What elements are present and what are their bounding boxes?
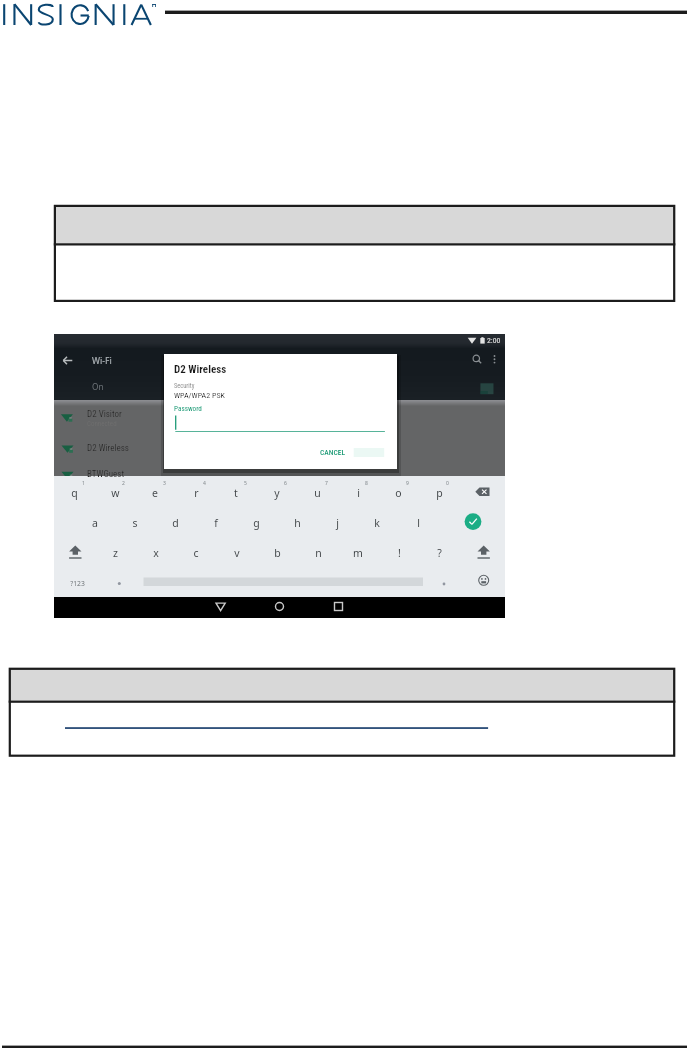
staticText: i xyxy=(357,486,360,500)
button[interactable]: 5 xyxy=(229,474,261,492)
button[interactable]: ! xyxy=(383,544,415,562)
button[interactable]: g xyxy=(240,514,272,532)
staticText: v xyxy=(234,546,240,560)
button[interactable]: o xyxy=(382,484,414,502)
staticText: c xyxy=(193,546,199,560)
button[interactable]: 8 xyxy=(350,474,382,492)
staticText: q xyxy=(71,486,78,500)
button[interactable]: f xyxy=(200,514,232,532)
staticText: WPA/WPA2 PSK xyxy=(174,391,225,400)
staticText: Security xyxy=(174,382,195,390)
button[interactable]: e xyxy=(139,484,171,502)
button[interactable]: n xyxy=(302,544,334,562)
button[interactable]: z xyxy=(99,544,131,562)
button[interactable]: 6 xyxy=(269,474,301,492)
button[interactable]: ? xyxy=(423,544,455,562)
staticText: b xyxy=(274,546,281,560)
button[interactable]: b xyxy=(261,544,293,562)
staticText: 7 xyxy=(325,480,328,487)
staticText: e xyxy=(152,486,158,500)
staticText: 1 xyxy=(82,480,85,487)
staticText: y xyxy=(274,486,280,500)
button[interactable]: l xyxy=(402,514,434,532)
button[interactable]: c xyxy=(180,544,212,562)
staticText: k xyxy=(374,516,380,530)
staticText: D2 Wireless xyxy=(87,443,129,454)
staticText: g xyxy=(253,516,260,530)
staticText: ! xyxy=(398,546,401,560)
staticText: 8 xyxy=(365,480,368,487)
staticText: 5 xyxy=(244,480,247,487)
button[interactable]: i xyxy=(342,484,374,502)
button[interactable]: Support link xyxy=(65,721,488,733)
staticText: 0 xyxy=(446,480,449,487)
button[interactable]: p xyxy=(423,484,455,502)
staticText: 4 xyxy=(203,480,206,487)
staticText: p xyxy=(436,486,443,500)
staticText: r xyxy=(194,486,199,500)
button[interactable]: a xyxy=(79,514,111,532)
button[interactable]: w xyxy=(99,484,131,502)
staticText: n xyxy=(315,546,322,560)
staticText: a xyxy=(92,516,98,530)
staticText: CANCEL xyxy=(320,448,346,457)
staticText: ? xyxy=(437,546,442,560)
staticText: 2 xyxy=(122,480,125,487)
staticText: z xyxy=(113,546,118,560)
button[interactable]: y xyxy=(261,484,293,502)
button[interactable]: j xyxy=(321,514,353,532)
staticText: o xyxy=(395,486,402,500)
staticText: t xyxy=(234,486,238,500)
staticText: ?123 xyxy=(70,579,85,588)
staticText: d xyxy=(172,516,179,530)
staticText: D2 Visitor xyxy=(87,409,122,420)
button[interactable]: 7 xyxy=(310,474,342,492)
button[interactable]: m xyxy=(342,544,374,562)
button[interactable]: k xyxy=(361,514,393,532)
staticText: m xyxy=(353,546,363,560)
staticText: f xyxy=(214,516,218,530)
button[interactable]: t xyxy=(220,484,252,502)
staticText: BTWGuest xyxy=(87,469,125,480)
staticText: Password xyxy=(174,404,202,412)
button[interactable]: 0 xyxy=(431,474,463,492)
button[interactable]: r xyxy=(180,484,212,502)
staticText: On xyxy=(92,381,104,392)
staticText: 6 xyxy=(284,480,287,487)
staticText: h xyxy=(294,516,301,530)
staticText: 2:00 xyxy=(487,336,501,345)
staticText: D2 Wireless xyxy=(174,363,227,376)
button[interactable]: u xyxy=(301,484,333,502)
staticText: 9 xyxy=(406,480,409,487)
staticText: w xyxy=(111,486,120,500)
button[interactable]: Wi-Fi xyxy=(54,334,505,618)
button[interactable]: s xyxy=(119,514,151,532)
button[interactable]: 9 xyxy=(391,474,423,492)
button[interactable]: q xyxy=(58,484,90,502)
staticText: x xyxy=(153,546,159,560)
button[interactable]: ?123 xyxy=(61,574,93,592)
button[interactable]: h xyxy=(281,514,313,532)
staticText: Wi-Fi xyxy=(92,355,112,367)
button[interactable]: x xyxy=(140,544,172,562)
staticText: l xyxy=(417,516,420,530)
button[interactable]: v xyxy=(221,544,253,562)
button[interactable]: 4 xyxy=(188,474,220,492)
button[interactable]: 1 xyxy=(67,474,99,492)
button[interactable]: 2 xyxy=(107,474,139,492)
staticText: j xyxy=(336,516,339,530)
button[interactable]: 3 xyxy=(148,474,180,492)
staticText: 3 xyxy=(163,480,166,487)
staticText: s xyxy=(132,516,138,530)
staticText: u xyxy=(314,486,321,500)
button[interactable]: d xyxy=(159,514,191,532)
